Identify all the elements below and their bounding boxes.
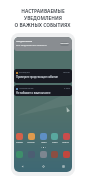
staticText: Музыка [62, 141, 70, 144]
staticText: Почта [41, 141, 47, 144]
staticText: НАСТРАИВАЕМЫЕ [21, 8, 65, 15]
button[interactable]: Приложение [63, 151, 70, 158]
button[interactable]: Приложение [40, 151, 47, 158]
button[interactable]: Настройки [60, 42, 69, 46]
staticText: Проверьте предстоящее событие [16, 75, 59, 79]
button[interactable]: Недавние [61, 164, 66, 169]
button[interactable]: Домой [41, 164, 46, 169]
staticText: Напоминание [19, 87, 34, 90]
button[interactable]: Почта [40, 133, 47, 144]
button[interactable]: Музыка [62, 133, 70, 144]
staticText: Уведомления [16, 39, 33, 42]
staticText: Карты [52, 141, 58, 144]
staticText: Настройки [60, 42, 69, 46]
staticText: Галерея [27, 141, 35, 144]
staticText: 5 мин [64, 87, 70, 90]
button[interactable]: Приложение [16, 151, 23, 158]
button[interactable]: Карты [51, 133, 58, 144]
button[interactable]: Приложение [51, 151, 58, 158]
button[interactable]: Назад [20, 164, 25, 169]
staticText: Все уведомления активны [16, 43, 47, 46]
staticText: УВЕДОМЛЕНИЯ [24, 15, 62, 22]
button[interactable]: Галерея [27, 133, 35, 144]
button[interactable]: Напоминание [14, 85, 72, 96]
staticText: Не забудьте о важном деле [16, 91, 51, 94]
staticText: О ВАЖНЫХ СОБЫТИЯХ [14, 22, 71, 29]
button[interactable]: Календарь [14, 69, 72, 83]
button[interactable]: Уведомления [14, 37, 72, 51]
staticText: Календарь [19, 71, 30, 74]
button[interactable]: Камера [16, 133, 23, 144]
staticText: Камера [16, 141, 23, 144]
staticText: сейчас [63, 71, 70, 74]
